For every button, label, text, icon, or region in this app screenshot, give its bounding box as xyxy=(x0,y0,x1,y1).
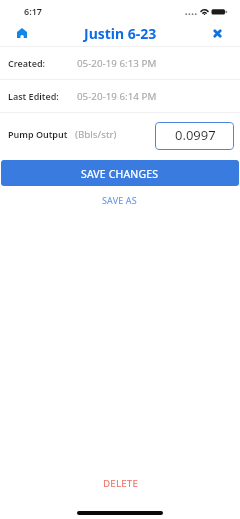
button[interactable]: DELETE xyxy=(85,472,156,495)
staticText: 05-20-19 6:13 PM xyxy=(77,57,157,70)
button[interactable]: Created: xyxy=(0,47,240,79)
staticText: (Bbls/str) xyxy=(75,128,117,141)
button[interactable]: Last Edited: xyxy=(0,80,240,112)
staticText: Created: xyxy=(8,57,46,69)
staticText: SAVE CHANGES xyxy=(81,167,159,181)
button[interactable]: 0.0997 xyxy=(156,123,233,149)
staticText: 05-20-19 6:14 PM xyxy=(77,90,157,103)
button[interactable]: SAVE AS xyxy=(85,192,156,210)
staticText: 0.0997 xyxy=(175,126,216,144)
button[interactable]: SAVE CHANGES xyxy=(1,160,239,186)
staticText: SAVE AS xyxy=(102,194,137,206)
button[interactable]: Close xyxy=(205,24,240,44)
staticText: DELETE xyxy=(103,477,138,490)
staticText: 6:17 xyxy=(24,5,42,17)
staticText: Pump Output xyxy=(8,128,68,140)
staticText: Last Edited: xyxy=(8,90,59,102)
staticText: Justin 6-23 xyxy=(84,24,157,43)
button[interactable]: Home xyxy=(0,26,34,43)
